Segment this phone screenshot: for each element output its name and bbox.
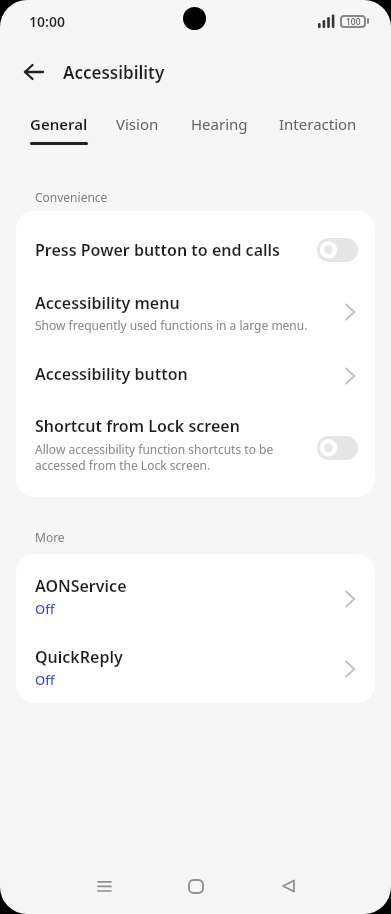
staticText: Off: [35, 671, 55, 689]
staticText: QuickReply: [35, 646, 123, 668]
staticText: Accessibility menu: [35, 292, 180, 314]
button[interactable]: [182, 873, 210, 899]
button[interactable]: Accessibility button: [16, 347, 375, 405]
staticText: Show frequently used functions in a larg…: [35, 317, 308, 333]
button[interactable]: QuickReply: [16, 629, 375, 703]
button[interactable]: General: [30, 114, 88, 145]
button[interactable]: AONService: [16, 554, 375, 629]
button[interactable]: Shortcut from Lock screen: [16, 405, 375, 497]
staticText: Convenience: [35, 189, 108, 205]
staticText: Accessibility: [63, 61, 165, 84]
button[interactable]: Interaction: [279, 114, 357, 134]
staticText: Shortcut from Lock screen: [35, 415, 240, 437]
button[interactable]: Accessibility menu: [16, 289, 375, 347]
button[interactable]: Vision: [116, 114, 159, 134]
staticText: Off: [35, 600, 55, 618]
button[interactable]: [24, 54, 60, 90]
button[interactable]: Press Power button to end calls: [16, 211, 375, 289]
staticText: More: [35, 529, 65, 545]
button[interactable]: [90, 873, 118, 899]
staticText: 100: [346, 16, 361, 28]
staticText: Press Power button to end calls: [35, 239, 317, 261]
button[interactable]: [317, 238, 358, 262]
button[interactable]: Hearing: [191, 114, 248, 134]
staticText: 10:00: [29, 12, 65, 31]
button[interactable]: [274, 873, 302, 899]
staticText: General: [30, 114, 88, 134]
staticText: Accessibility button: [35, 363, 344, 385]
staticText: Allow accessibility function shortcuts t…: [35, 441, 274, 473]
button[interactable]: [317, 436, 358, 460]
staticText: AONService: [35, 575, 127, 597]
